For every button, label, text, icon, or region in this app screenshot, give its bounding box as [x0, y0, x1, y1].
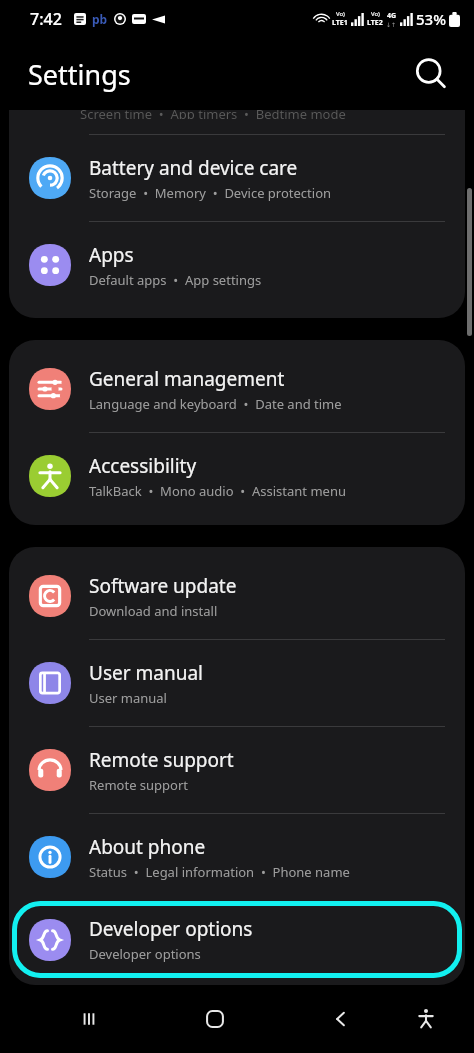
staticText: Language and keyboard • Date and time — [89, 395, 342, 413]
button[interactable]: Software update — [9, 553, 465, 639]
staticText: About phone — [89, 834, 206, 860]
staticText: pb — [92, 11, 108, 27]
staticText: Vo) — [371, 10, 380, 18]
staticText: Apps — [89, 242, 134, 268]
staticText: ↓↑ — [386, 21, 397, 28]
staticText: Developer options — [89, 916, 253, 942]
staticText: Remote support — [89, 747, 234, 773]
staticText: Settings — [28, 56, 131, 93]
staticText: 53% — [416, 9, 446, 29]
staticText: LTE1 — [332, 18, 348, 28]
staticText: User manual — [89, 660, 203, 686]
button[interactable]: General management — [9, 346, 465, 432]
button[interactable]: About phone — [9, 814, 465, 900]
staticText: 7:42 — [30, 8, 62, 30]
button[interactable]: Search — [412, 55, 450, 93]
staticText: General management — [89, 366, 285, 392]
staticText: 4G — [387, 11, 397, 21]
button[interactable]: Remote support — [9, 727, 465, 813]
button[interactable]: Back — [278, 985, 404, 1053]
staticText: Software update — [89, 573, 237, 599]
button[interactable]: User manual — [9, 640, 465, 726]
button[interactable]: Developer options — [12, 901, 462, 978]
button[interactable]: Accessibility — [9, 433, 465, 519]
staticText: Status • Legal information • Phone name — [89, 863, 350, 881]
staticText: TalkBack • Mono audio • Assistant menu — [89, 482, 346, 500]
staticText: Download and install — [89, 602, 218, 620]
button[interactable]: Apps — [9, 222, 465, 308]
staticText: LTE2 — [367, 18, 383, 28]
button[interactable]: Home — [152, 985, 278, 1053]
staticText: Remote support — [89, 776, 189, 794]
staticText: Vo) — [336, 10, 345, 18]
button[interactable]: Battery and device care — [9, 135, 465, 221]
staticText: Default apps • App settings — [89, 271, 262, 289]
staticText: Accessibility — [89, 453, 197, 479]
staticText: Battery and device care — [89, 155, 298, 181]
button[interactable]: Accessibility — [404, 985, 448, 1053]
staticText: Developer options — [89, 945, 201, 963]
staticText: User manual — [89, 689, 167, 707]
staticText: Storage • Memory • Device protection — [89, 184, 332, 202]
button[interactable]: Recents — [26, 985, 152, 1053]
staticText: Screen time • App timers • Bedtime mode — [80, 110, 346, 119]
